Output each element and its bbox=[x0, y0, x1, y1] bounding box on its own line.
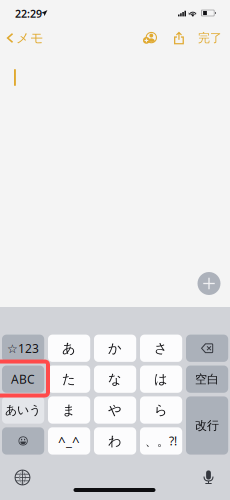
staticText: や bbox=[108, 402, 122, 418]
staticText: 空白 bbox=[195, 372, 219, 386]
button[interactable]: 空白 bbox=[186, 365, 228, 393]
button[interactable]: は bbox=[140, 365, 182, 393]
button[interactable]: Dictation bbox=[193, 464, 224, 490]
button[interactable]: Share bbox=[165, 24, 193, 52]
button[interactable]: ☆123 bbox=[2, 335, 44, 362]
staticText: 改行 bbox=[195, 418, 219, 433]
staticText: は bbox=[154, 371, 168, 387]
staticText: 、。?! bbox=[145, 433, 177, 449]
staticText: わ bbox=[108, 433, 122, 449]
staticText: あいう bbox=[5, 403, 41, 417]
staticText: ABC bbox=[11, 371, 35, 387]
staticText: ☆123 bbox=[7, 340, 39, 356]
staticText: メモ bbox=[16, 30, 44, 46]
button[interactable]: ら bbox=[140, 396, 182, 424]
button[interactable]: や bbox=[94, 396, 136, 424]
button[interactable]: あいう bbox=[2, 396, 44, 424]
button[interactable]: 、。?! bbox=[140, 427, 182, 455]
button[interactable]: わ bbox=[94, 427, 136, 455]
button[interactable]: ^_^ bbox=[48, 427, 90, 455]
button[interactable]: 完了 bbox=[195, 24, 225, 52]
button[interactable]: ま bbox=[48, 396, 90, 424]
staticText: か bbox=[108, 340, 122, 356]
button[interactable]: な bbox=[94, 365, 136, 393]
staticText: ま bbox=[62, 402, 76, 418]
staticText: な bbox=[108, 371, 122, 387]
staticText: 22:29 bbox=[15, 6, 42, 21]
button[interactable]: メモ bbox=[0, 24, 52, 52]
button[interactable]: Add attachment bbox=[197, 272, 220, 295]
staticText: あ bbox=[62, 340, 76, 356]
button[interactable]: Next keyboard bbox=[7, 464, 38, 490]
button[interactable]: Emoji bbox=[2, 427, 44, 455]
button[interactable]: Delete bbox=[186, 335, 228, 362]
button[interactable]: Add People bbox=[136, 24, 164, 52]
button[interactable]: ABC bbox=[2, 365, 44, 393]
staticText: ^_^ bbox=[58, 432, 80, 450]
button[interactable]: 改行 bbox=[186, 396, 228, 455]
button[interactable]: さ bbox=[140, 335, 182, 362]
staticText: 完了 bbox=[198, 31, 222, 45]
staticText: ら bbox=[154, 402, 168, 418]
button[interactable]: た bbox=[48, 365, 90, 393]
staticText: さ bbox=[154, 340, 168, 356]
button[interactable]: か bbox=[94, 335, 136, 362]
button[interactable]: あ bbox=[48, 335, 90, 362]
staticText: た bbox=[62, 371, 76, 387]
